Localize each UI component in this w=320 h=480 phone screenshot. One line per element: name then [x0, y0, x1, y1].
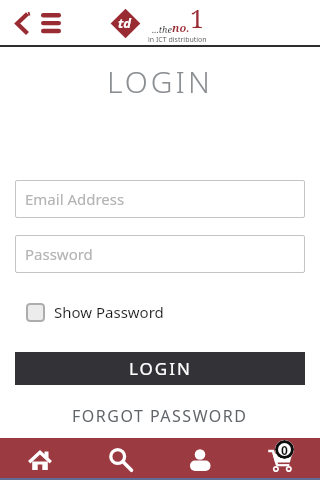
staticText: FORGOT PASSWORD: [72, 405, 248, 427]
staticText: in ICT distribution: [148, 35, 207, 45]
staticText: no.: [172, 20, 190, 35]
button[interactable]: [80, 438, 160, 480]
button[interactable]: Password: [15, 235, 305, 273]
button[interactable]: Email Address: [15, 180, 305, 218]
staticText: LOGIN: [107, 61, 213, 102]
staticText: ...the: [152, 23, 172, 35]
button[interactable]: FORGOT PASSWORD: [68, 401, 252, 431]
staticText: 1: [190, 1, 204, 35]
staticText: td: [118, 14, 132, 32]
staticText: Email Address: [25, 189, 125, 209]
button[interactable]: [37, 9, 65, 37]
staticText: 0: [281, 442, 288, 458]
button[interactable]: LOGIN: [15, 352, 305, 385]
button[interactable]: [8, 9, 36, 37]
button[interactable]: Show Password: [26, 302, 294, 322]
button[interactable]: [160, 438, 240, 480]
staticText: Password: [25, 244, 93, 264]
staticText: Show Password: [54, 302, 164, 322]
button[interactable]: [0, 438, 80, 480]
staticText: LOGIN: [129, 357, 192, 380]
button[interactable]: 0: [240, 438, 320, 480]
